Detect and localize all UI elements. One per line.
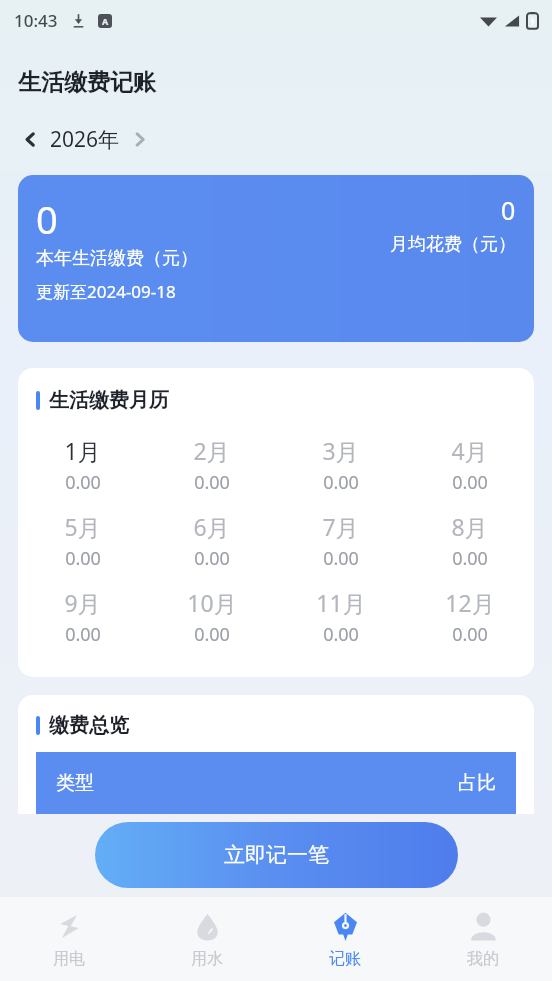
staticText: 0.00 (194, 546, 230, 571)
button[interactable]: 6月 (147, 503, 276, 579)
staticText: 0.00 (65, 470, 101, 495)
staticText: 我的 (467, 949, 499, 969)
staticText: 4月 (451, 435, 488, 466)
staticText: 0.00 (194, 470, 230, 495)
staticText: 2026年 (50, 125, 120, 154)
staticText: 本年生活缴费（元） (36, 247, 198, 270)
button[interactable]: 4月 (405, 427, 534, 503)
button[interactable]: 10月 (147, 579, 276, 655)
button[interactable]: 立即记一笔 (95, 822, 458, 888)
staticText: 更新至2024-09-18 (36, 280, 176, 303)
staticText: 2月 (193, 435, 230, 466)
other: Water (192, 911, 223, 942)
other: Next year (131, 131, 148, 148)
button[interactable]: Water (138, 897, 276, 981)
staticText: 10月 (187, 587, 237, 618)
staticText: 0.00 (323, 546, 359, 571)
button[interactable]: 9月 (18, 579, 147, 655)
button[interactable]: 2月 (147, 427, 276, 503)
staticText: 0 (501, 193, 516, 227)
staticText: 0.00 (65, 546, 101, 571)
staticText: 11月 (316, 587, 366, 618)
staticText: 用电 (53, 949, 85, 969)
staticText: 缴费总览 (49, 713, 129, 738)
other: Electricity (54, 911, 85, 942)
staticText: 3月 (322, 435, 359, 466)
staticText: 占比 (458, 771, 496, 795)
staticText: 0.00 (452, 622, 488, 647)
button[interactable]: 8月 (405, 503, 534, 579)
staticText: 0.00 (323, 470, 359, 495)
staticText: 1月 (64, 435, 101, 466)
staticText: 生活缴费月历 (49, 388, 169, 413)
button[interactable]: 3月 (276, 427, 405, 503)
button[interactable]: 7月 (276, 503, 405, 579)
staticText: 0.00 (452, 470, 488, 495)
staticText: 生活缴费记账 (18, 68, 156, 97)
staticText: 记账 (329, 949, 361, 969)
staticText: 5月 (64, 511, 101, 542)
staticText: 用水 (191, 949, 223, 969)
button[interactable]: 0 (18, 175, 534, 342)
staticText: 0.00 (194, 622, 230, 647)
button[interactable]: 12月 (405, 579, 534, 655)
staticText: 类型 (56, 771, 94, 795)
staticText: 0.00 (452, 546, 488, 571)
staticText: 9月 (64, 587, 101, 618)
button[interactable]: Profile (414, 897, 552, 981)
button[interactable]: 11月 (276, 579, 405, 655)
button[interactable]: 5月 (18, 503, 147, 579)
staticText: 立即记一笔 (224, 842, 329, 868)
button[interactable]: Bookkeeping (276, 897, 414, 981)
other: Bookkeeping (330, 911, 361, 942)
staticText: 6月 (193, 511, 230, 542)
staticText: 8月 (451, 511, 488, 542)
staticText: 12月 (445, 587, 495, 618)
staticText: 10:43 (14, 9, 58, 32)
staticText: A (102, 15, 109, 27)
button[interactable]: Electricity (0, 897, 138, 981)
button[interactable]: Previous year (22, 125, 148, 154)
staticText: 0.00 (323, 622, 359, 647)
other: Previous year (22, 131, 39, 148)
staticText: 7月 (322, 511, 359, 542)
staticText: 月均花费（元） (390, 233, 516, 256)
other: Profile (468, 911, 499, 942)
staticText: 0.00 (65, 622, 101, 647)
button[interactable]: 1月 (18, 427, 147, 503)
staticText: 0 (36, 193, 58, 245)
